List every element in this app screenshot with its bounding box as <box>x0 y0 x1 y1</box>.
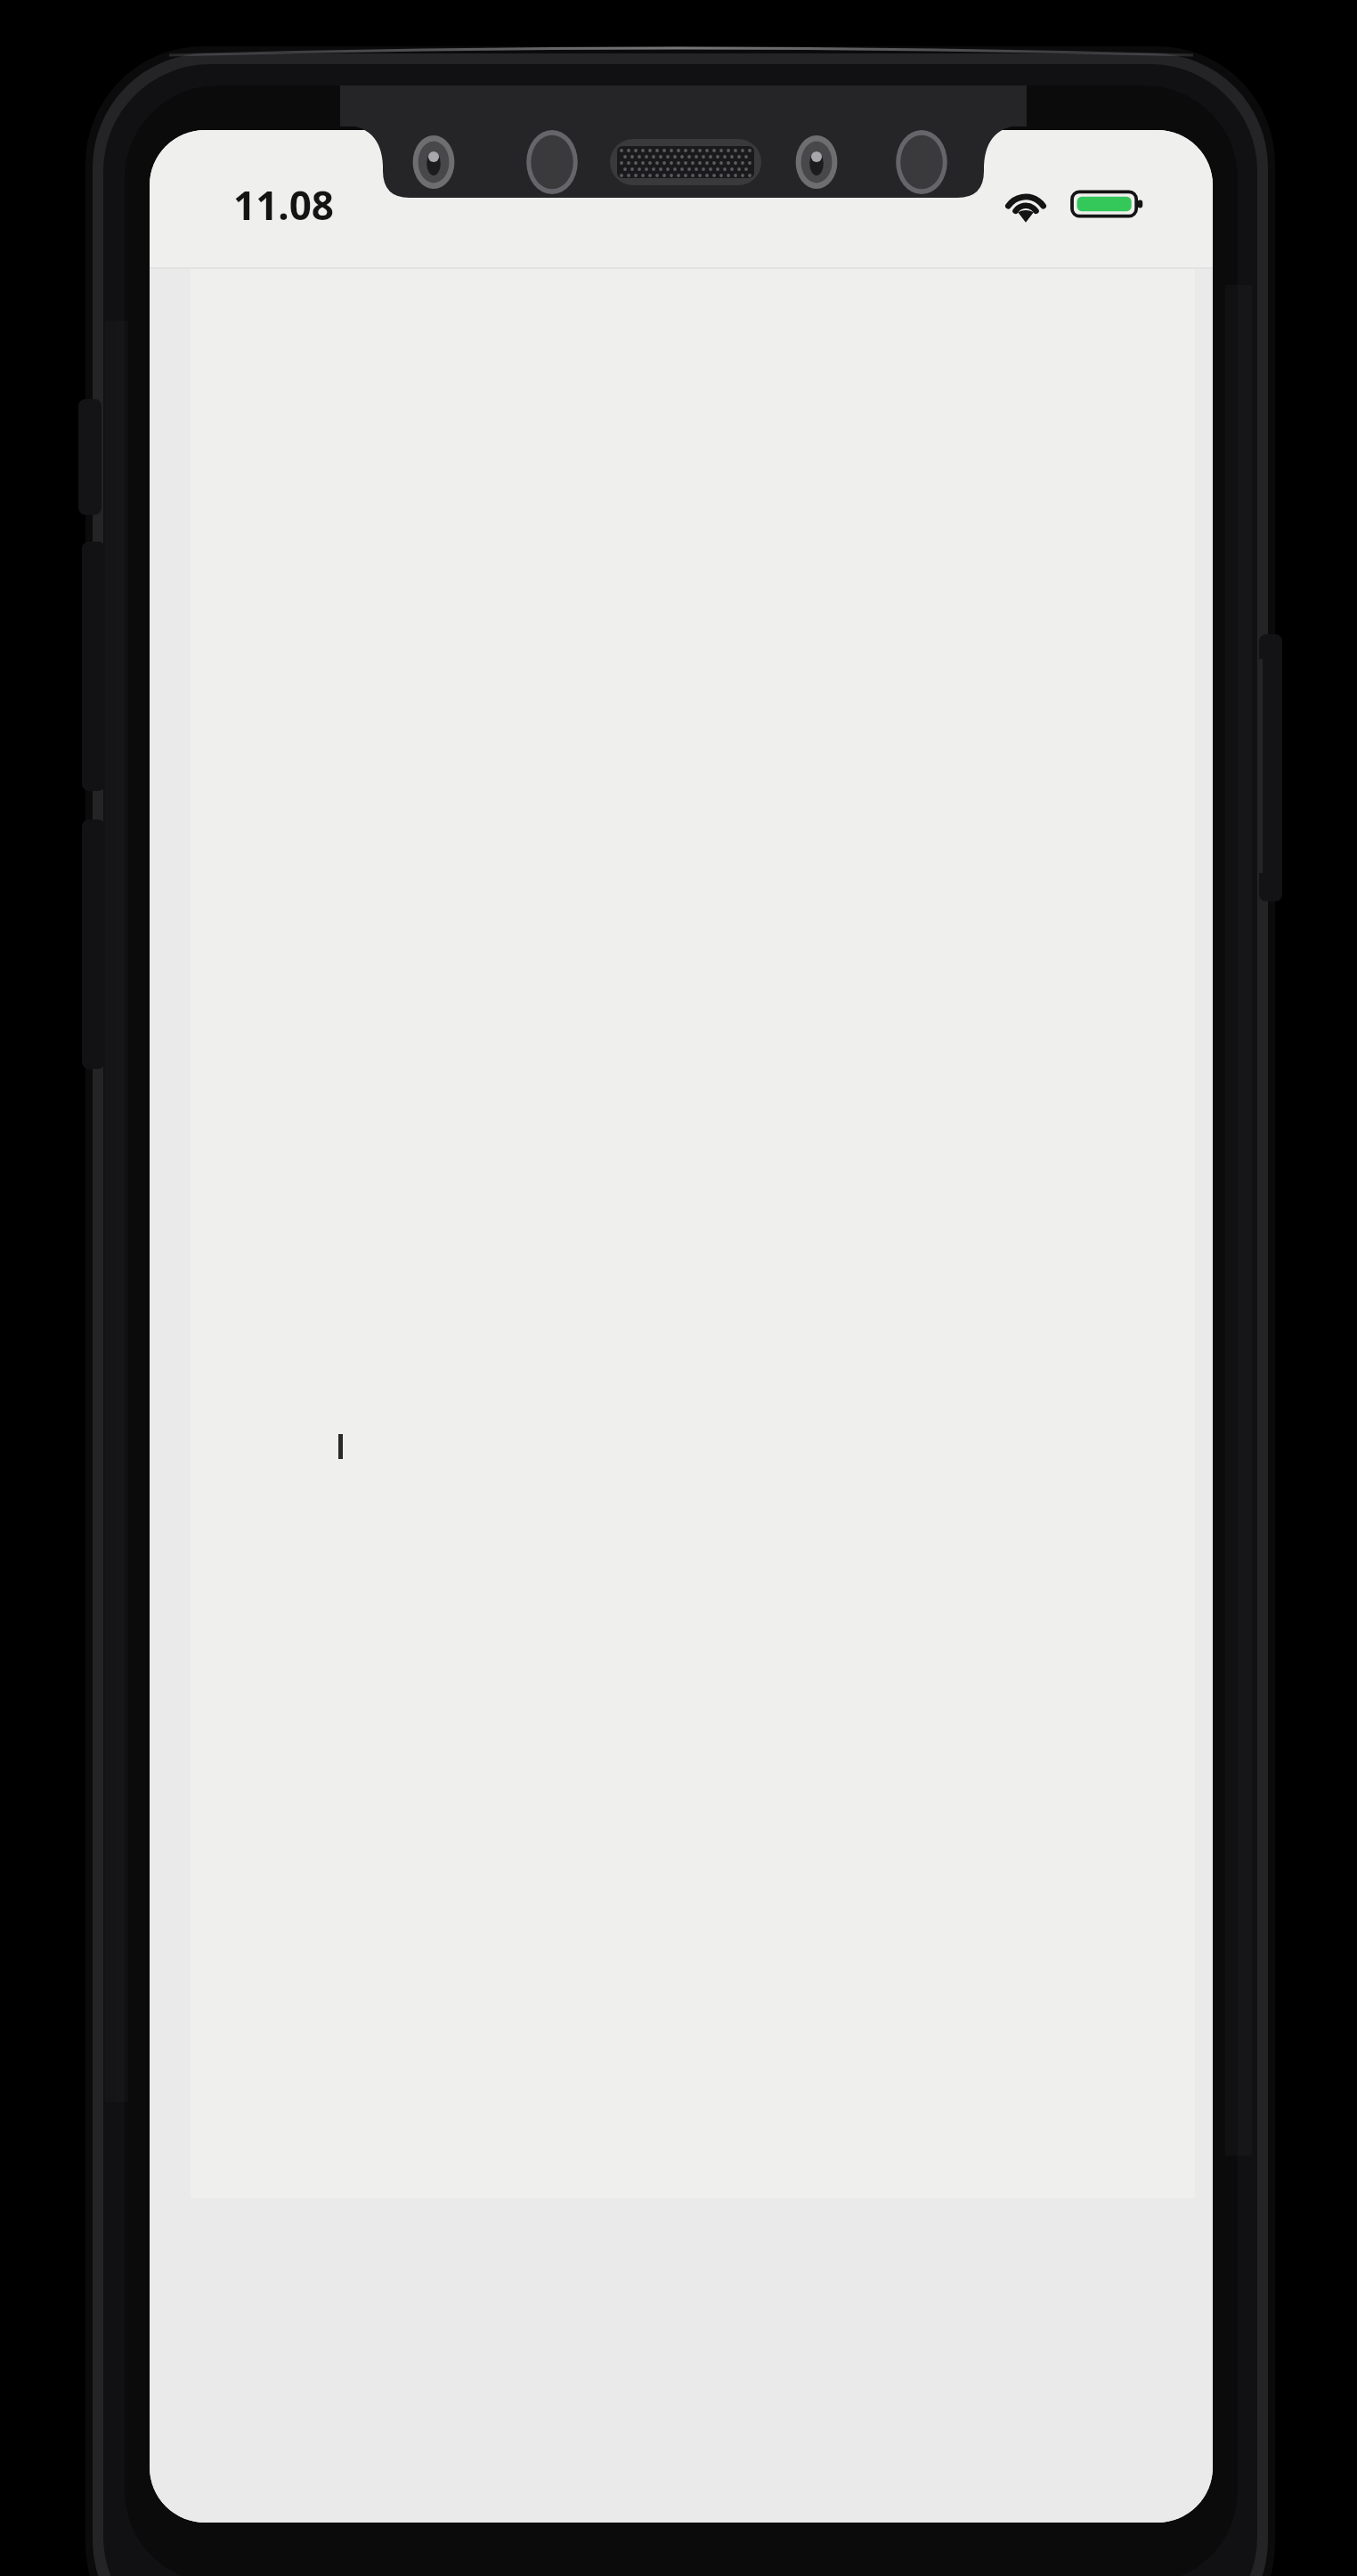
other: Wi-Fi signal <box>1003 184 1049 224</box>
staticText: 11.08 <box>233 178 335 232</box>
other: Battery full <box>1072 184 1145 224</box>
